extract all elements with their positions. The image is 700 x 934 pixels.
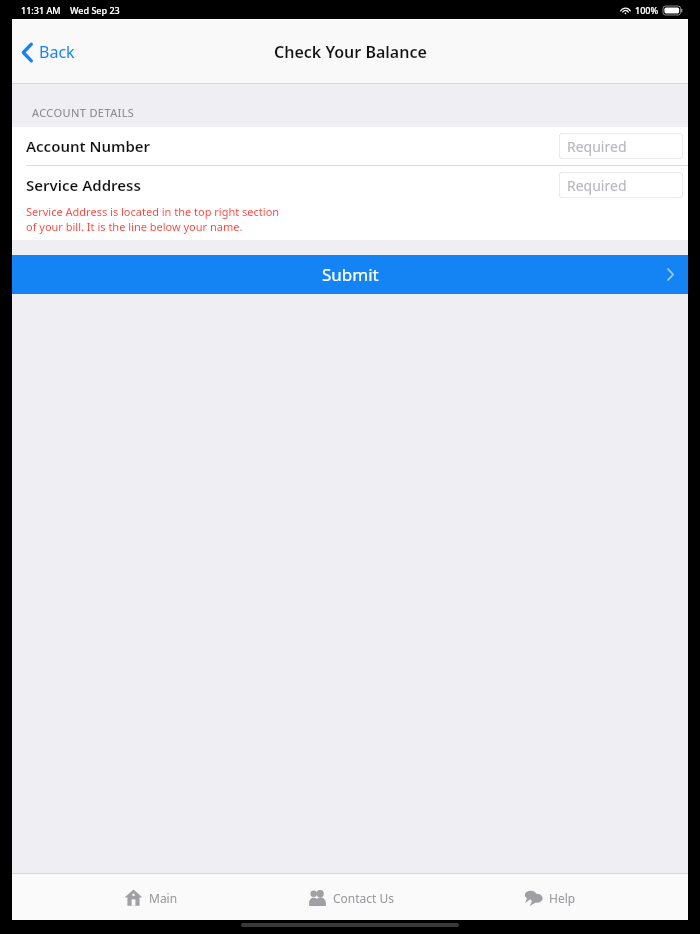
staticText: Wed Sep 23 <box>70 4 120 16</box>
other: Contact Us <box>308 888 327 907</box>
other: Help <box>524 888 543 907</box>
button[interactable]: Help <box>506 880 594 915</box>
button[interactable]: Required <box>559 133 683 159</box>
button[interactable]: Service Address <box>12 166 688 204</box>
staticText: Required <box>567 176 627 195</box>
staticText: Help <box>549 890 576 906</box>
staticText: Contact Us <box>333 890 395 906</box>
button[interactable]: Submit <box>12 255 688 294</box>
staticText: Back <box>39 41 75 63</box>
staticText: ACCOUNT DETAILS <box>32 105 135 120</box>
other: Main <box>124 888 143 907</box>
staticText: Account Number <box>26 136 151 156</box>
button[interactable]: Required <box>559 172 683 198</box>
staticText: Service Address is located in the top ri… <box>26 204 280 234</box>
staticText: Submit <box>322 263 379 286</box>
staticText: Main <box>149 890 178 906</box>
button[interactable]: Main <box>106 880 196 915</box>
staticText: 100% <box>635 4 659 16</box>
staticText: Required <box>567 137 627 156</box>
button[interactable]: Account Number <box>12 127 688 165</box>
button[interactable]: Contact Us <box>290 880 413 915</box>
staticText: Check Your Balance <box>274 41 427 63</box>
staticText: 11:31 AM <box>21 4 61 16</box>
staticText: Service Address <box>26 175 141 195</box>
button[interactable]: Back <box>12 33 89 71</box>
